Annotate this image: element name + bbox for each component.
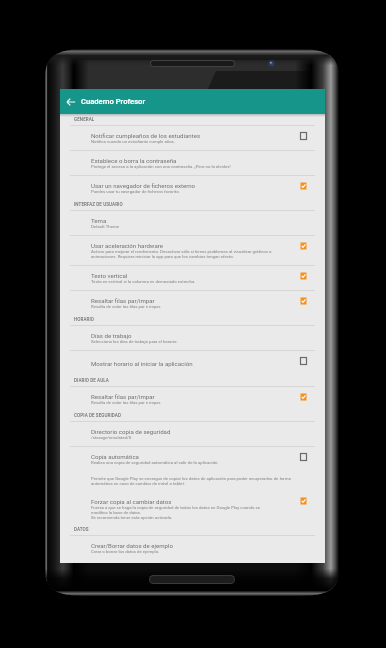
staticText: Establece o borra la contraseña	[91, 157, 177, 164]
staticText: Copia automática	[91, 453, 139, 460]
staticText: Puedes usar tu navegador de ficheros fav…	[91, 189, 180, 194]
staticText: Resalta de color las filas par e impar.	[91, 400, 162, 405]
staticText: Tema	[91, 217, 107, 224]
staticText: Texto en vertical si la columna es demas…	[91, 279, 196, 284]
staticText: Resalta de color las filas par e impar.	[91, 304, 162, 309]
staticText: Realiza una copia de seguridad automátic…	[91, 460, 219, 465]
staticText: animaciones. Requiere reiniciar la app p…	[91, 254, 234, 259]
staticText: HORARIO	[74, 317, 95, 322]
button[interactable]: Notificar cumpleaños de los estudiantes	[60, 126, 325, 151]
button[interactable]: Forzar copia al cambiar datos	[60, 491, 325, 525]
button[interactable]: Back	[60, 89, 81, 114]
button[interactable]: Usar un navegador de ficheros externo	[60, 176, 325, 200]
staticText: modifica la base de datos.	[91, 510, 142, 515]
staticText: /storage/emulated/0	[91, 435, 132, 440]
button[interactable]: Resaltar filas par/impar	[60, 387, 325, 411]
staticText: Activar para mejorar el rendimiento. Des…	[91, 249, 272, 254]
staticText: Resaltar filas par/impar	[91, 297, 155, 304]
staticText: Permite que Google Play se encargue de c…	[91, 476, 291, 481]
staticText: Protege el acceso a la aplicación con un…	[91, 164, 231, 169]
staticText: Texto vertical	[91, 272, 128, 279]
button[interactable]: Resaltar filas par/impar	[60, 291, 325, 315]
staticText: Usar aceleración hardware	[91, 242, 163, 249]
staticText: Cuaderno Profesor	[81, 97, 146, 106]
staticText: Resaltar filas par/impar	[91, 393, 155, 400]
staticText: Días de trabajo	[91, 332, 132, 339]
staticText: Forzar copia al cambiar datos	[91, 498, 172, 505]
button[interactable]: Días de trabajo	[60, 326, 325, 351]
staticText: Mostrar horario al iniciar la aplicación	[91, 360, 193, 367]
staticText: automática en caso de cambiar de móvil o…	[91, 481, 185, 486]
button[interactable]: Usar aceleración hardware	[60, 236, 325, 266]
button[interactable]: Crear/Borrar datos de ejemplo	[60, 536, 325, 560]
staticText: Selecciona los días de trabajo para el h…	[91, 339, 178, 344]
staticText: Directorio copia de seguridad	[91, 428, 171, 435]
button[interactable]: Copia automática	[60, 447, 325, 491]
staticText: GENERAL	[74, 117, 95, 122]
staticText: DATOS	[74, 527, 89, 532]
staticText: Se recomienda tener esta opción activada…	[91, 515, 173, 520]
staticText: Usar un navegador de ficheros externo	[91, 182, 196, 189]
button[interactable]: Directorio copia de seguridad	[60, 422, 325, 447]
staticText: DIARIO DE AULA	[74, 378, 109, 383]
button[interactable]: Texto vertical	[60, 266, 325, 291]
staticText: Crear/Borrar datos de ejemplo	[91, 542, 173, 549]
staticText: INTERFAZ DE USUARIO	[74, 202, 123, 207]
staticText: Default Theme	[91, 224, 119, 229]
staticText: COPIA DE SEGURIDAD	[74, 413, 121, 418]
staticText: Notificar cumpleaños de los estudiantes	[91, 132, 201, 139]
button[interactable]: Mostrar horario al iniciar la aplicación	[60, 351, 325, 376]
staticText: Notifica cuando un estudiante cumple año…	[91, 139, 175, 144]
staticText: Fuerza a que se haga la copia de segurid…	[91, 505, 261, 510]
button[interactable]: Tema	[60, 211, 325, 236]
button[interactable]: Establece o borra la contraseña	[60, 151, 325, 176]
staticText: Crear o borrar los datos de ejemplo.	[91, 549, 160, 554]
